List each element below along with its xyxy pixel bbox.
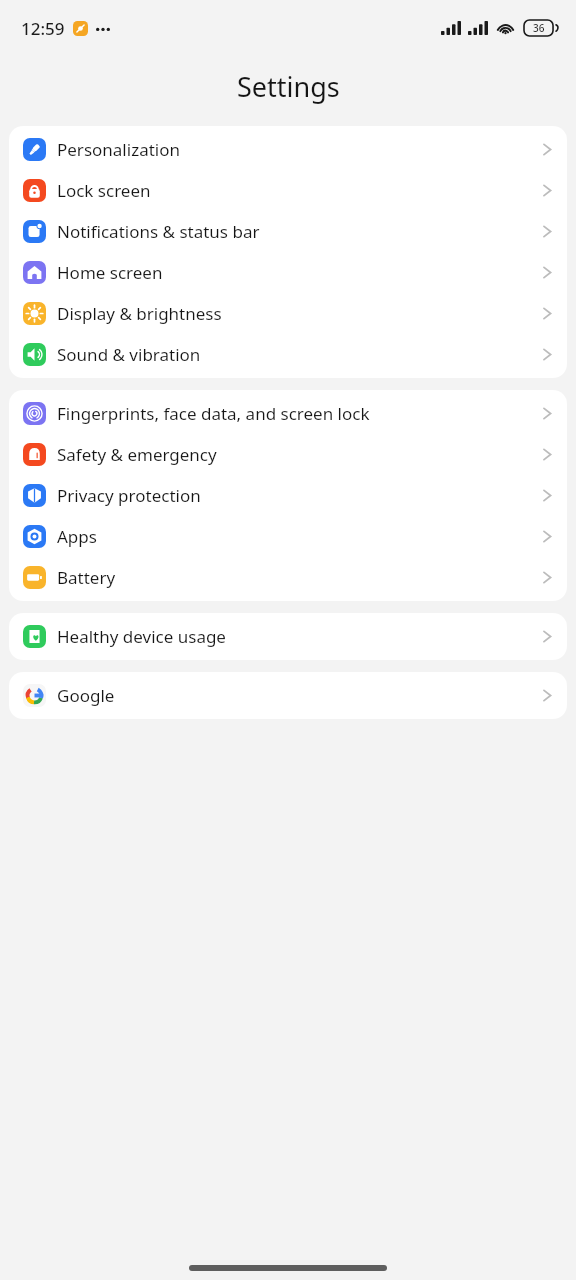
other: Safety and emergency [23,443,46,466]
staticText: 12:59 [21,17,65,40]
staticText: Battery [57,566,116,589]
button[interactable]: Sound and vibration [9,334,567,375]
staticText: Safety & emergency [57,443,217,466]
staticText: Lock screen [57,179,151,202]
other: Apps [23,525,46,548]
button[interactable]: Google [9,675,567,716]
staticText: Google [57,684,115,707]
other: Privacy protection [23,484,46,507]
staticText: Settings [237,68,340,105]
other: Healthy device usage [23,625,46,648]
staticText: Display & brightness [57,302,222,325]
button[interactable]: Privacy protection [9,475,567,516]
other: Google [23,684,46,707]
button[interactable]: Healthy device usage [9,616,567,657]
button[interactable]: Fingerprints, face data, and screen lock [9,393,567,434]
other: Fingerprints, face data, and screen lock [23,402,46,425]
button[interactable]: Home screen [9,252,567,293]
staticText: Fingerprints, face data, and screen lock [57,402,370,425]
button[interactable]: Personalization [9,129,567,170]
button[interactable]: Lock screen [9,170,567,211]
staticText: Notifications & status bar [57,220,260,243]
other: Home screen [23,261,46,284]
other: Lock screen [23,179,46,202]
staticText: Privacy protection [57,484,201,507]
button[interactable]: Display and brightness [9,293,567,334]
staticText: Apps [57,525,97,548]
button[interactable]: Notifications and status bar [9,211,567,252]
button[interactable]: Apps [9,516,567,557]
other: Personalization [23,138,46,161]
other: Sound and vibration [23,343,46,366]
other: Notifications and status bar [23,220,46,243]
staticText: 36 [533,21,545,35]
staticText: Sound & vibration [57,343,201,366]
button[interactable]: Safety and emergency [9,434,567,475]
staticText: Home screen [57,261,163,284]
staticText: Personalization [57,138,180,161]
button[interactable]: Battery [9,557,567,598]
other: Display and brightness [23,302,46,325]
staticText: Healthy device usage [57,625,226,648]
other: Battery [23,566,46,589]
